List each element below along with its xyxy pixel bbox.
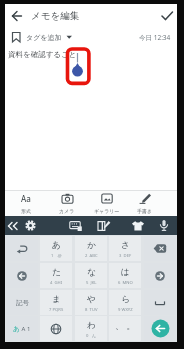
button[interactable] [9,8,25,24]
button[interactable]: ギャラリー [91,191,123,215]
staticText: か [87,240,96,251]
staticText: や [87,294,96,305]
button[interactable] [144,316,176,341]
button[interactable]: ま [40,290,72,315]
button[interactable]: 、 。 [109,316,141,341]
staticText: ら [121,294,130,305]
staticText: 手書き [137,208,153,214]
staticText: 5 JKL [86,280,97,286]
staticText: 4 GHI [50,280,63,286]
button[interactable]: 資料を確認すること [5,46,177,190]
staticText: た [52,267,61,278]
button[interactable]: か [75,236,107,261]
staticText: 記号 [16,299,29,307]
staticText: 8 TUV [85,307,98,313]
button[interactable]: わ [75,316,107,341]
staticText: A 1 [20,325,31,333]
staticText: な [87,267,96,278]
staticText: 資料を確認すること [8,50,77,59]
button[interactable]: 手書き [129,191,161,215]
button[interactable] [144,263,176,288]
button[interactable]: カメラ [51,191,83,215]
button[interactable]: は [109,263,141,288]
button[interactable]: な [75,263,107,288]
staticText: 0 ん [86,333,96,339]
staticText: 1 .@ [51,253,62,259]
button[interactable]: さ [109,236,141,261]
button[interactable]: あ [6,316,38,341]
button[interactable] [144,236,176,261]
staticText: タグを追加 [26,33,62,42]
button[interactable] [6,263,38,288]
staticText: 7 PQRS [49,307,64,313]
button[interactable] [20,216,40,235]
staticText: メモを編集 [31,10,80,22]
staticText: カメラ [59,208,75,214]
button[interactable] [154,216,174,235]
button[interactable] [128,216,148,235]
button[interactable]: 記号 [6,290,38,315]
button[interactable]: た [40,263,72,288]
staticText: は [121,267,130,278]
staticText: 形式 [21,208,31,214]
button[interactable]: タグを追加 [10,28,73,46]
staticText: 6 MNO [118,280,133,286]
staticText: 2 ABC [85,253,98,259]
staticText: ギャラリー [94,208,120,214]
staticText: わ [87,320,96,331]
button[interactable] [94,216,114,235]
staticText: 9 WXYZ [118,307,133,313]
button[interactable]: Aa [10,191,42,215]
button[interactable] [6,236,38,261]
button[interactable]: や [75,290,107,315]
staticText: 3 DEF [119,253,132,259]
button[interactable] [40,316,72,341]
button[interactable] [3,216,23,235]
staticText: 、 。 [115,319,136,331]
button[interactable]: ら [109,290,141,315]
staticText: ま [52,294,61,305]
button[interactable]: あ [40,236,72,261]
staticText: あ [13,325,20,333]
button[interactable] [66,216,86,235]
staticText: 今日 12:34 [139,33,171,42]
button[interactable] [159,7,175,23]
staticText: Aa [21,193,31,204]
staticText: あ [52,240,61,251]
staticText: さ [121,240,130,251]
button[interactable] [144,290,176,315]
